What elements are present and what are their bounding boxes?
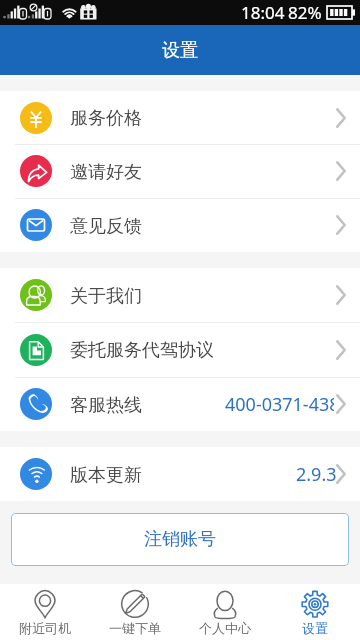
staticText: 附近司机 xyxy=(19,620,71,636)
button[interactable]: 邀请好友 xyxy=(0,144,360,198)
button[interactable]: 附近司机 xyxy=(0,584,90,640)
button[interactable]: 关于我们 xyxy=(0,268,360,322)
staticText: 设置 xyxy=(162,39,198,62)
button[interactable]: 个人中心 xyxy=(180,584,270,640)
button[interactable]: 委托服务代驾协议 xyxy=(0,322,360,377)
staticText: 版本更新 xyxy=(70,464,142,487)
button[interactable]: 一键下单 xyxy=(90,584,180,640)
button[interactable]: 意见反馈 xyxy=(0,198,360,252)
staticText: 个人中心 xyxy=(199,620,251,636)
button[interactable]: 注销账号 xyxy=(11,513,349,566)
staticText: 关于我们 xyxy=(70,285,142,308)
staticText: 82% xyxy=(288,1,322,24)
staticText: 意见反馈 xyxy=(70,215,142,238)
staticText: 18:04 xyxy=(241,1,285,24)
staticText: 一键下单 xyxy=(109,620,161,636)
button[interactable]: 客服热线 xyxy=(0,377,360,431)
staticText: 邀请好友 xyxy=(70,161,142,184)
staticText: 400-0371-4388 xyxy=(225,392,334,417)
staticText: 服务价格 xyxy=(70,107,142,130)
button[interactable]: 版本更新 xyxy=(0,447,360,501)
staticText: 2.9.3 xyxy=(296,462,337,487)
staticText: 客服热线 xyxy=(70,394,142,417)
button[interactable]: 服务价格 xyxy=(0,91,360,144)
button[interactable]: 设置 xyxy=(270,584,360,640)
staticText: 注销账号 xyxy=(144,528,216,551)
staticText: 设置 xyxy=(302,620,328,636)
staticText: 委托服务代驾协议 xyxy=(70,339,214,362)
